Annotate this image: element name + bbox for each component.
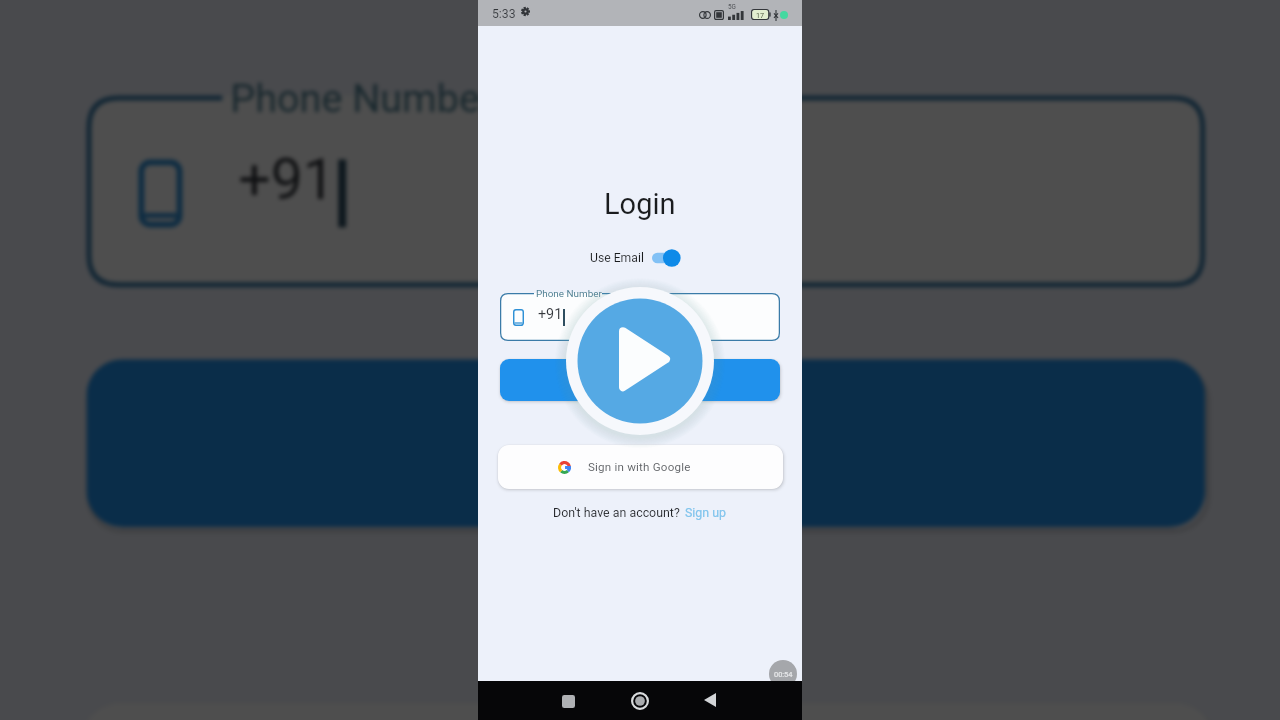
staticText: Send OTP: [522, 411, 770, 475]
button[interactable]: Sign in with Google: [498, 445, 783, 489]
button[interactable]: [500, 293, 780, 341]
button[interactable]: Home: [627, 688, 653, 714]
button[interactable]: Sign in with Google: [78, 703, 1217, 720]
staticText: Don't have an account?: [553, 505, 680, 520]
staticText: 5:33: [492, 7, 516, 21]
button[interactable]: Back: [697, 687, 723, 713]
button[interactable]: Send OTP: [86, 359, 1205, 527]
staticText: Phone Number: [230, 76, 494, 123]
button[interactable]: Recents: [555, 688, 581, 714]
staticText: Sign in with Google: [588, 460, 691, 474]
staticText: 00:54: [774, 670, 793, 679]
staticText: Use Email: [590, 251, 644, 265]
button[interactable]: Sign up: [685, 505, 727, 520]
staticText: 17: [756, 11, 765, 19]
button[interactable]: Send OTP: [500, 359, 780, 401]
staticText: +91: [538, 306, 563, 323]
button[interactable]: Use Email toggle: [652, 248, 681, 268]
button[interactable]: Play: [552, 273, 728, 449]
staticText: Send OTP: [609, 372, 671, 388]
button[interactable]: Screen recorder timer: [769, 660, 797, 688]
staticText: +91: [238, 147, 338, 215]
staticText: Login: [604, 187, 676, 221]
staticText: Phone Number: [536, 288, 602, 300]
staticText: 5G: [728, 3, 736, 11]
button[interactable]: [86, 96, 1205, 287]
